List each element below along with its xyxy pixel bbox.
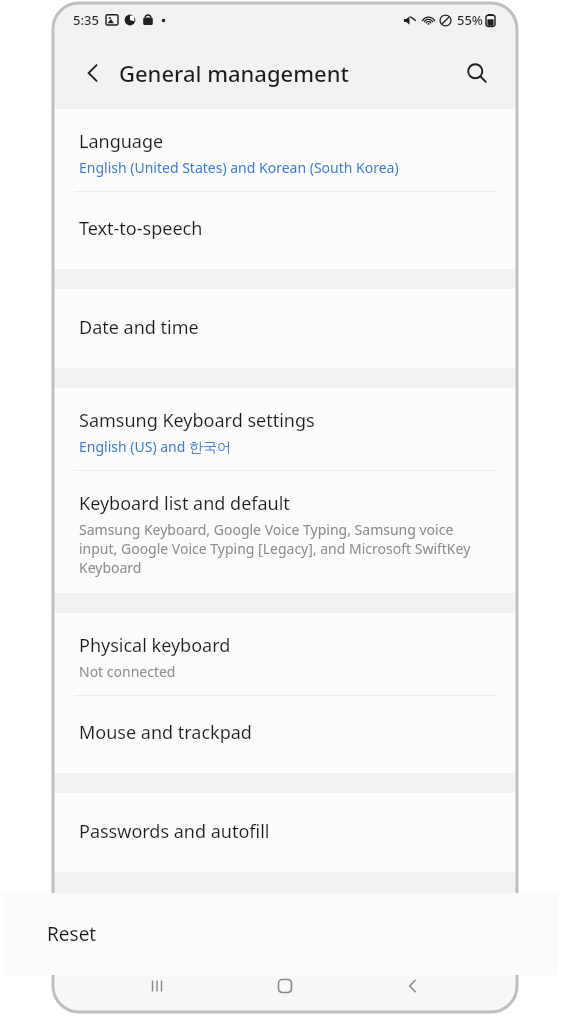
staticText: Keyboard list and default bbox=[79, 491, 290, 516]
staticText: 5:35 bbox=[73, 11, 99, 29]
button[interactable]: Text-to-speech bbox=[53, 192, 517, 269]
staticText: Language bbox=[79, 129, 164, 154]
staticText: Passwords and autofill bbox=[79, 819, 270, 844]
button[interactable]: Recents bbox=[133, 962, 181, 1010]
button[interactable]: Language bbox=[53, 109, 517, 191]
button[interactable]: Back bbox=[71, 51, 115, 95]
button[interactable]: Mouse and trackpad bbox=[53, 696, 517, 773]
button[interactable]: Samsung Keyboard settings bbox=[53, 388, 517, 470]
staticText: Mouse and trackpad bbox=[79, 720, 252, 745]
staticText: Date and time bbox=[79, 315, 199, 340]
staticText: General management bbox=[119, 58, 349, 88]
button[interactable]: Search bbox=[455, 51, 499, 95]
staticText: Samsung Keyboard settings bbox=[79, 408, 315, 433]
staticText: 55% bbox=[457, 11, 483, 29]
staticText: English (US) and 한국어 bbox=[79, 437, 231, 456]
staticText: Samsung Keyboard, Google Voice Typing, S… bbox=[79, 520, 491, 577]
staticText: Text-to-speech bbox=[79, 216, 203, 241]
staticText: Reset bbox=[47, 921, 97, 947]
button[interactable]: Physical keyboard bbox=[53, 613, 517, 695]
button[interactable]: Date and time bbox=[53, 289, 517, 368]
staticText: English (United States) and Korean (Sout… bbox=[79, 158, 399, 177]
button[interactable]: Home bbox=[261, 962, 309, 1010]
button[interactable]: Back bbox=[389, 962, 437, 1010]
staticText: Not connected bbox=[79, 662, 176, 681]
button[interactable]: Reset bbox=[3, 893, 558, 975]
staticText: Physical keyboard bbox=[79, 633, 231, 658]
button[interactable]: Keyboard list and default bbox=[53, 471, 517, 593]
button[interactable]: Passwords and autofill bbox=[53, 793, 517, 872]
